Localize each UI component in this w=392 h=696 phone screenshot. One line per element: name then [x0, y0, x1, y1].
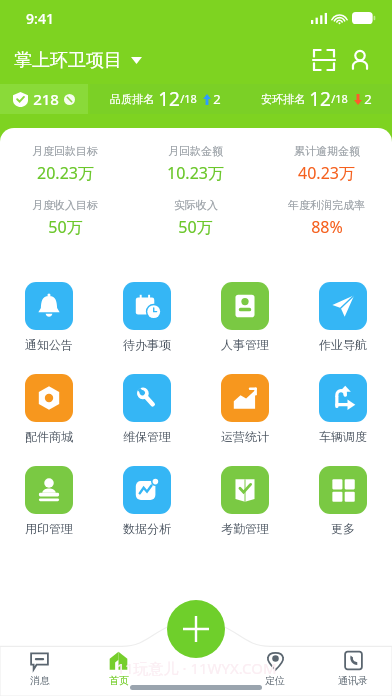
button[interactable]: 通知公告	[0, 280, 98, 354]
staticText: 品质排名	[110, 92, 154, 106]
button[interactable]: 月回款金额	[130, 142, 261, 186]
button[interactable]: 月度回款目标	[0, 142, 130, 186]
staticText: 月度回款目标	[32, 144, 98, 158]
button[interactable]: 运营统计	[196, 372, 294, 446]
staticText: 安环排名	[261, 92, 305, 106]
staticText: 218	[33, 89, 59, 109]
staticText: 通知公告	[25, 337, 73, 352]
staticText: 考勤管理	[221, 521, 269, 536]
staticText: 11玩意儿 · 11WYX.COM	[116, 658, 277, 678]
button[interactable]: 月度收入目标	[0, 196, 130, 240]
button[interactable]: 掌上环卫项目	[14, 45, 142, 76]
button[interactable]: 218	[0, 84, 88, 114]
button[interactable]: 考勤管理	[196, 464, 294, 538]
staticText: 50万	[178, 216, 213, 238]
button[interactable]: 消息	[0, 640, 79, 696]
button[interactable]: 数据分析	[98, 464, 196, 538]
staticText: 人事管理	[221, 337, 269, 352]
staticText: 更多	[331, 521, 355, 536]
staticText: 配件商城	[25, 429, 73, 444]
button[interactable]: 定位	[236, 640, 314, 696]
staticText: 掌上环卫项目	[14, 49, 122, 72]
button[interactable]: Scan QR code	[306, 42, 342, 78]
staticText: 数据分析	[123, 521, 171, 536]
staticText: 12	[309, 86, 331, 112]
staticText: 40.23万	[298, 162, 355, 184]
staticText: 维保管理	[123, 429, 171, 444]
button[interactable]: 年度利润完成率	[261, 196, 392, 240]
staticText: 9:41	[26, 9, 54, 28]
button[interactable]: 维保管理	[98, 372, 196, 446]
button[interactable]: 通讯录	[314, 640, 392, 696]
button[interactable]: Profile	[342, 42, 378, 78]
button[interactable]: Add	[167, 600, 225, 658]
staticText: 88%	[311, 216, 343, 238]
staticText: 实际收入	[174, 198, 218, 212]
button[interactable]: 安环排名	[241, 84, 392, 114]
button[interactable]: 车辆调度	[294, 372, 392, 446]
button[interactable]: 实际收入	[130, 196, 261, 240]
button[interactable]: 首页	[79, 640, 158, 696]
staticText: /18	[180, 91, 197, 106]
button[interactable]: 更多	[294, 464, 392, 538]
button[interactable]: 品质排名	[90, 84, 241, 114]
button[interactable]: 作业导航	[294, 280, 392, 354]
staticText: 作业导航	[319, 337, 367, 352]
staticText: 用印管理	[25, 521, 73, 536]
staticText: 消息	[30, 674, 50, 687]
staticText: 2	[364, 90, 372, 108]
button[interactable]: 用印管理	[0, 464, 98, 538]
staticText: 20.23万	[37, 162, 94, 184]
staticText: 累计逾期金额	[294, 144, 360, 158]
staticText: 运营统计	[221, 429, 269, 444]
staticText: 10.23万	[167, 162, 224, 184]
staticText: 车辆调度	[319, 429, 367, 444]
staticText: 定位	[265, 674, 285, 687]
staticText: 月回款金额	[168, 144, 223, 158]
staticText: 通讯录	[338, 674, 368, 687]
staticText: 待办事项	[123, 337, 171, 352]
staticText: 12	[158, 86, 180, 112]
staticText: 50万	[48, 216, 83, 238]
staticText: 月度收入目标	[32, 198, 98, 212]
button[interactable]: 配件商城	[0, 372, 98, 446]
button[interactable]: 待办事项	[98, 280, 196, 354]
button[interactable]: 人事管理	[196, 280, 294, 354]
staticText: /18	[331, 91, 348, 106]
button[interactable]: 累计逾期金额	[261, 142, 392, 186]
staticText: 首页	[109, 674, 129, 687]
staticText: 年度利润完成率	[288, 198, 365, 212]
staticText: 2	[213, 90, 221, 108]
